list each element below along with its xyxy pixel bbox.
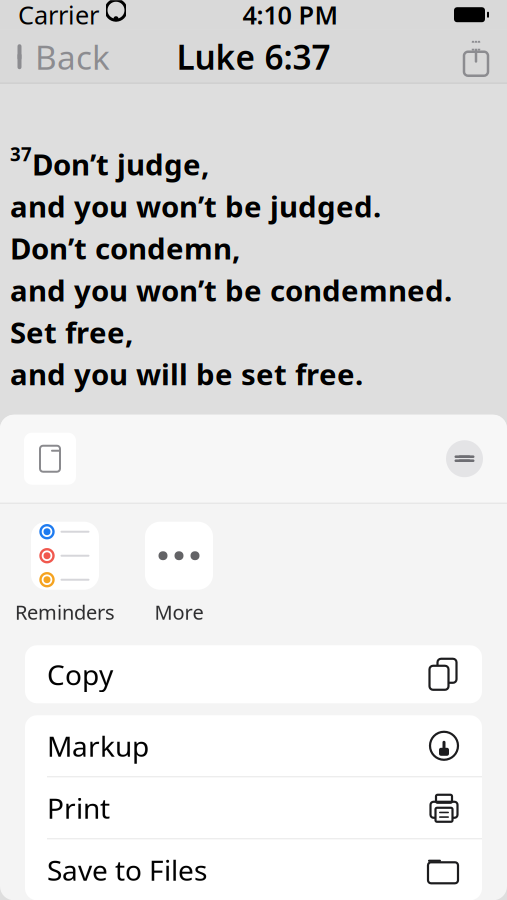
staticText: Don’t judge, (32, 145, 209, 184)
staticText: 37 (10, 142, 32, 166)
button[interactable]: Copy (25, 645, 482, 703)
button[interactable]: Save to Files (25, 839, 482, 900)
button[interactable]: Print (25, 777, 482, 838)
staticText: Luke 6:37 (176, 35, 330, 79)
staticText: Save to Files (47, 851, 207, 888)
button[interactable]: Back (0, 30, 124, 84)
staticText: Copy (47, 656, 113, 693)
button[interactable]: More (122, 522, 236, 625)
staticText: Reminders (15, 599, 115, 625)
staticText: Carrier (18, 0, 99, 31)
button[interactable]: Markup (25, 715, 482, 776)
button[interactable]: Close (446, 440, 483, 477)
staticText: Print (47, 789, 110, 826)
staticText: and you won’t be condemned. (10, 271, 452, 310)
staticText: and you won’t be judged. (10, 187, 381, 226)
staticText: Markup (47, 727, 149, 764)
staticText: More (154, 599, 203, 625)
button[interactable]: Share (445, 30, 507, 84)
staticText: Back (35, 35, 110, 79)
staticText: Set free, (10, 312, 133, 351)
staticText: 4:10 PM (242, 0, 338, 31)
button[interactable]: Reminders (8, 522, 122, 625)
staticText: Don’t condemn, (10, 229, 240, 268)
staticText: and you will be set free. (10, 354, 363, 393)
